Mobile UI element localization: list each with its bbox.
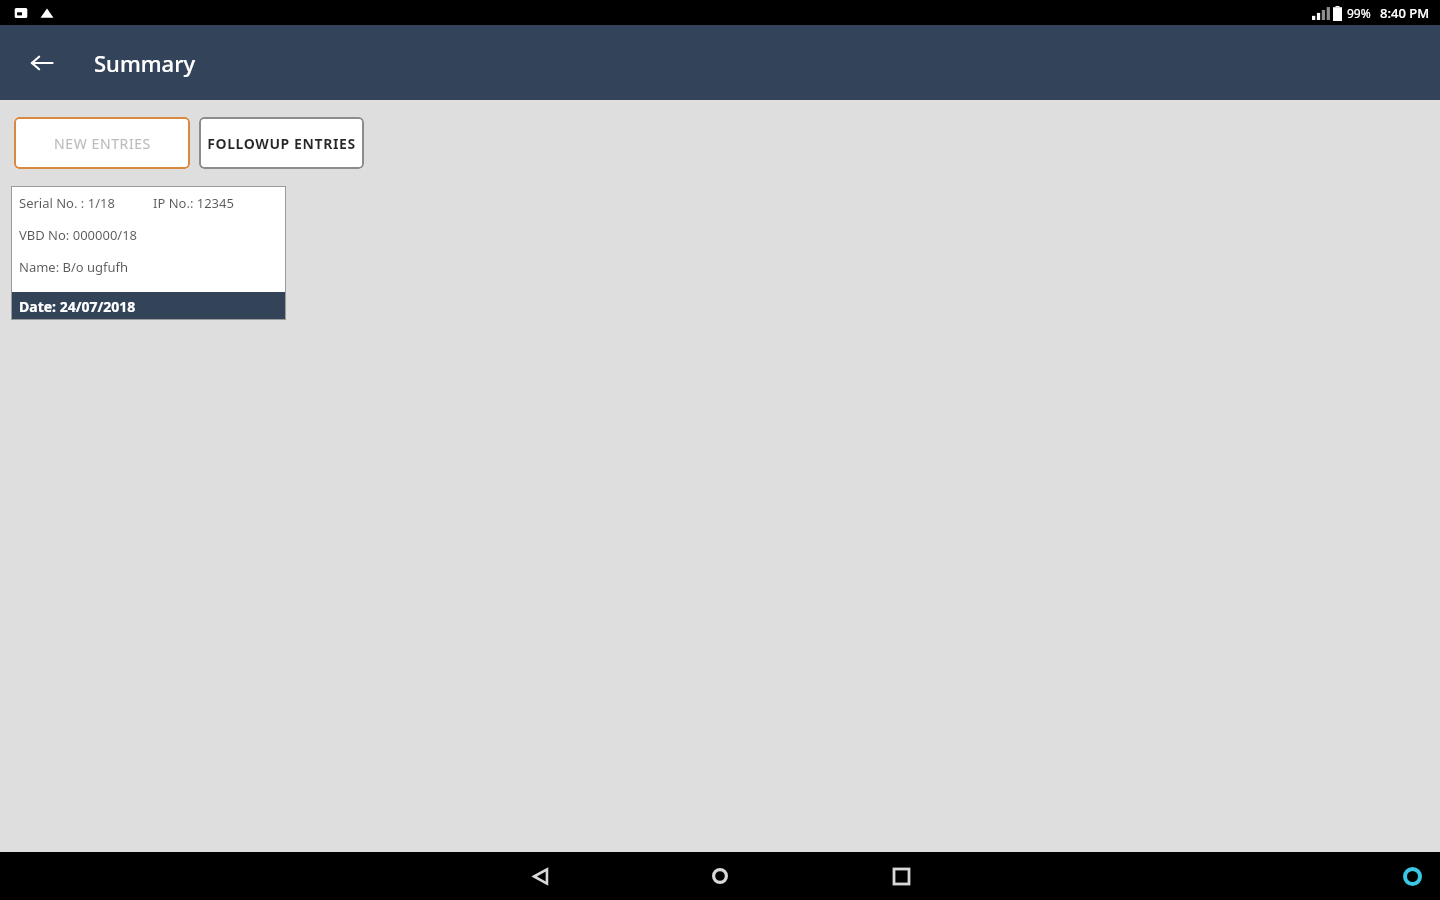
staticText: Name: B/o ugfufh [19, 258, 129, 276]
button[interactable]: Back [516, 852, 564, 900]
staticText: Summary [94, 48, 196, 78]
button[interactable]: FOLLOWUP ENTRIES [199, 117, 364, 169]
button[interactable]: NEW ENTRIES [14, 117, 190, 169]
staticText: 99% [1347, 5, 1371, 21]
staticText: NEW ENTRIES [54, 134, 151, 153]
button[interactable]: Assistant [1392, 856, 1432, 896]
staticText: VBD No: 000000/18 [19, 226, 138, 244]
staticText: Serial No. : 1/18 [19, 194, 115, 212]
staticText: Date: 24/07/2018 [19, 297, 136, 316]
button[interactable]: Date: 24/07/2018 [11, 292, 286, 320]
staticText: IP No.: 12345 [153, 194, 234, 212]
button[interactable]: Home [696, 852, 744, 900]
staticText: FOLLOWUP ENTRIES [207, 134, 356, 153]
staticText: 8:40 PM [1380, 4, 1430, 22]
button[interactable]: Back [18, 39, 66, 87]
button[interactable]: Recent apps [877, 852, 925, 900]
